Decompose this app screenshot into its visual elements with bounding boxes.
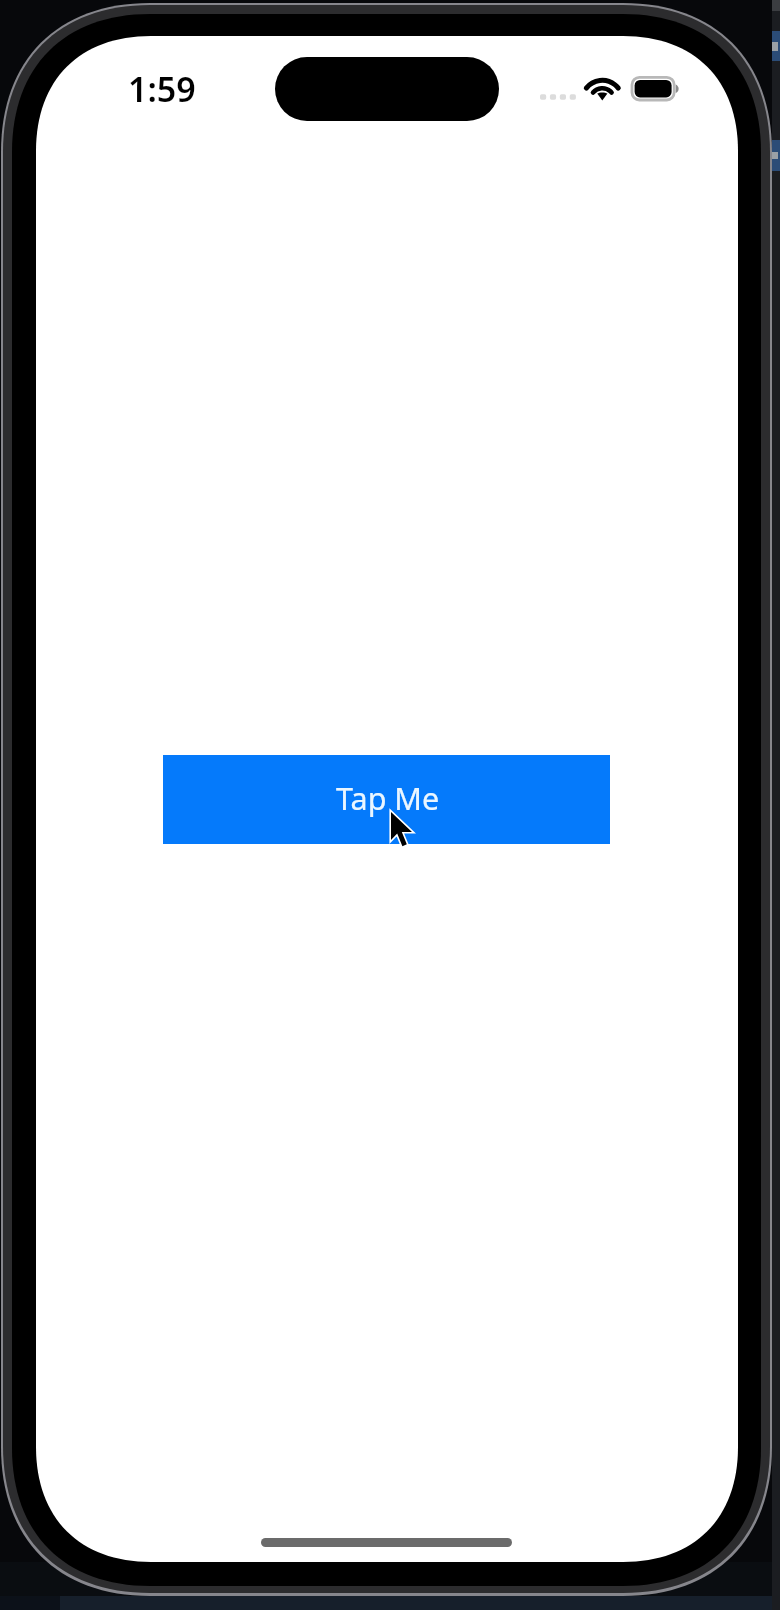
- staticText: 1:59: [128, 66, 196, 112]
- staticText: Tap Me: [336, 777, 440, 819]
- button[interactable]: Tap Me: [163, 755, 610, 844]
- other: Home indicator: [261, 1538, 512, 1547]
- other: Cellular, Wi-Fi and battery status: [520, 72, 720, 152]
